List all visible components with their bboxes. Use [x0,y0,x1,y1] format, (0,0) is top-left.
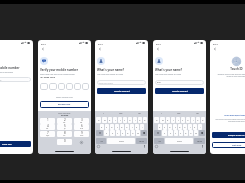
button[interactable]: Not Now [212,142,245,148]
button[interactable]: y [181,117,185,123]
button[interactable]: Backspace [141,130,147,136]
button[interactable]: p [143,117,147,123]
button[interactable]: return [194,138,205,144]
button[interactable]: d [168,124,172,130]
button[interactable]: h [183,124,187,130]
button[interactable]: Enable Touch ID [212,132,245,138]
button[interactable]: y [123,117,127,123]
button[interactable]: Shift [154,130,161,136]
button[interactable]: o [196,117,200,123]
button[interactable]: a [158,124,162,130]
button[interactable]: 1 [40,118,55,124]
button[interactable]: s [105,124,109,130]
button[interactable]: Backspace [199,130,205,136]
button[interactable]: w [102,117,107,123]
button[interactable]: u [128,117,132,123]
button[interactable]: v [179,130,183,136]
button[interactable] [74,83,81,90]
button[interactable]: i [133,117,137,123]
button[interactable]: space [165,138,193,144]
button[interactable]: o [138,117,142,123]
button[interactable]: Emoji [155,145,158,148]
button[interactable]: Create account [155,88,204,94]
button[interactable]: a [100,124,104,130]
button[interactable] [49,83,57,90]
button[interactable]: c [116,130,120,136]
button[interactable]: space [107,138,135,144]
button[interactable]: n [131,130,135,136]
button[interactable]: w [160,117,165,123]
button[interactable]: Back [40,46,46,52]
button[interactable]: Learn more about Touch ID [210,114,245,116]
button[interactable]: x [168,130,173,136]
button[interactable]: g [178,124,182,130]
button[interactable]: m [194,130,198,136]
button[interactable]: 3 [74,118,89,124]
button[interactable]: Dictate [143,145,146,148]
button[interactable]: 9 [74,131,89,137]
button[interactable] [82,83,89,90]
button[interactable]: i [191,117,195,123]
button[interactable]: Emoji [97,145,100,148]
button[interactable]: return [136,138,147,144]
button[interactable]: 5 [57,124,72,130]
button[interactable]: 123 [96,138,106,144]
button[interactable]: e [108,117,112,123]
button[interactable]: r [113,117,117,123]
button[interactable]: u [186,117,190,123]
button[interactable]: 4 [40,124,55,130]
button[interactable]: k [135,124,139,130]
button[interactable]: f [115,124,119,130]
button[interactable]: Resend OTP [40,101,89,108]
button[interactable]: v [121,130,125,136]
button[interactable]: q [154,117,159,123]
button[interactable]: The [170,111,188,116]
button[interactable]: l [140,124,144,130]
button[interactable]: I'm [130,111,148,116]
button[interactable]: 8 [57,131,72,137]
button[interactable]: l [198,124,202,130]
button[interactable]: Back [97,46,103,52]
button[interactable]: Delete [74,139,89,145]
button[interactable]: Back [155,46,161,52]
button[interactable]: j [188,124,192,130]
button[interactable]: r [171,117,175,123]
button[interactable]: Ravi [157,80,202,85]
button[interactable]: d [110,124,114,130]
button[interactable]: b [126,130,130,136]
button[interactable]: Enter mobile number [0,77,29,82]
button[interactable]: 0 [57,139,72,145]
button[interactable]: Shift [96,130,103,136]
button[interactable]: Send OTP [0,141,31,147]
button[interactable]: 6 [74,124,89,130]
button[interactable]: x [110,130,115,136]
button[interactable]: t [118,117,122,123]
button[interactable]: 123 [154,138,164,144]
button[interactable]: k [193,124,197,130]
button[interactable]: s [163,124,167,130]
button[interactable]: g [120,124,124,130]
button[interactable]: I [95,111,112,116]
button[interactable]: m [136,130,140,136]
button[interactable]: Dictate [201,145,204,148]
button[interactable]: p [201,117,205,123]
button[interactable]: I [153,111,170,116]
button[interactable]: z [104,130,109,136]
button[interactable] [40,83,48,90]
button[interactable]: z [162,130,167,136]
button[interactable]: The [112,111,130,116]
button[interactable]: Back [212,46,218,52]
button[interactable]: f [173,124,177,130]
button[interactable]: n [189,130,193,136]
button[interactable]: 2 [57,118,72,124]
button[interactable] [58,83,65,90]
button[interactable]: j [130,124,134,130]
button[interactable]: 7 [40,131,55,137]
button[interactable]: Enter your name [99,80,144,85]
button[interactable]: t [176,117,180,123]
button[interactable] [66,83,73,90]
button[interactable]: Create account [97,88,146,94]
button[interactable]: h [125,124,129,130]
button[interactable]: b [184,130,188,136]
button[interactable]: c [174,130,178,136]
